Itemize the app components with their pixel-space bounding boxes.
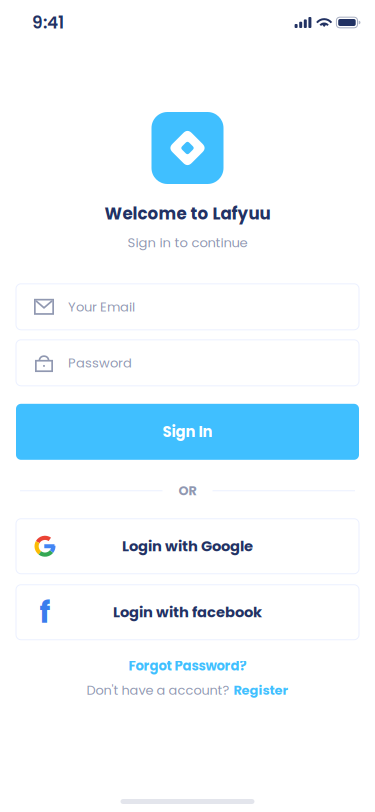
staticText: Your Email	[68, 298, 135, 316]
button[interactable]: f	[16, 585, 359, 640]
button[interactable]: Forgot Password?	[120, 654, 254, 678]
staticText: Sign In	[162, 421, 212, 442]
button[interactable]: Register	[233, 681, 288, 699]
button[interactable]: Sign In	[16, 404, 359, 460]
staticText: Welcome to Lafyuu	[104, 202, 270, 225]
staticText: OR	[178, 482, 196, 500]
staticText: Sign in to continue	[127, 233, 247, 252]
staticText: Password	[68, 354, 132, 372]
staticText: f	[39, 591, 50, 633]
staticText: Don't have a account?	[86, 681, 229, 699]
staticText: Login with facebook	[113, 602, 262, 622]
staticText: Forgot Password?	[128, 657, 246, 675]
staticText: Register	[233, 681, 288, 699]
button[interactable]: Login with Google	[16, 519, 359, 574]
staticText: 9:41	[32, 11, 64, 34]
staticText: Login with Google	[122, 536, 253, 556]
